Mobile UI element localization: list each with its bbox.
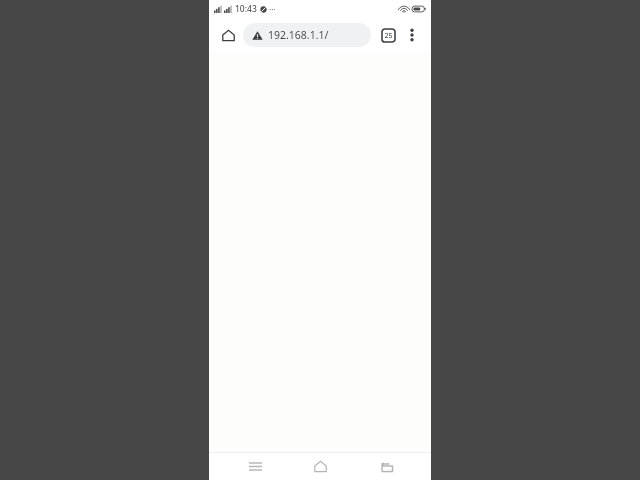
staticText: 192.168.1.1/login.asp [268, 28, 362, 42]
button[interactable]: Recent apps [235, 453, 275, 480]
staticText: 25 [384, 31, 393, 41]
staticText: 10:43 [235, 3, 257, 15]
button[interactable]: More options [401, 24, 423, 46]
button[interactable]: Home [217, 24, 239, 46]
staticText: ··· [269, 4, 276, 15]
button[interactable]: Tabs [377, 24, 399, 46]
button[interactable]: Back [366, 453, 406, 480]
button[interactable]: 192.168.1.1/login.asp [243, 23, 371, 47]
button[interactable]: Home [300, 453, 340, 480]
